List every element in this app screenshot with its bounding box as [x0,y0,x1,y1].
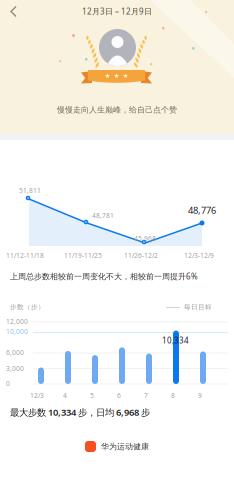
staticText: 11/19-11/25 [64,251,102,260]
staticText: 6,000 [6,348,24,357]
staticText: 0 [6,379,10,388]
staticText: 10,000 [6,327,28,336]
staticText: 每日目标 [184,303,212,311]
staticText: 48,781 [92,211,114,220]
staticText: 11/26-12/2 [124,251,158,260]
staticText: 3,000 [6,364,24,373]
staticText: 11/12-11/18 [6,251,44,260]
staticText: 12/3 [30,391,44,400]
staticText: 12,000 [6,317,28,326]
staticText: 12月3日 – 12月9日 [82,6,152,17]
staticText: 7 [144,391,148,400]
staticText: 4 [63,391,67,400]
staticText: 步数 [12,13,36,28]
staticText: 华为运动健康 [101,442,149,451]
staticText: 6 [117,391,121,400]
staticText: 5 [90,391,94,400]
staticText: 12/3-12/9 [184,251,214,260]
staticText: 51,811 [19,186,41,195]
staticText: 最大步数 10,334 步，日均 6,968 步 [10,406,150,418]
staticText: 8 [171,391,175,400]
staticText: 步数（步） [10,303,45,311]
staticText: 45,968 [134,234,156,243]
staticText: 上周总步数相较前一周变化不大，相较前一周提升6% [10,271,198,282]
staticText: 9 [198,391,202,400]
staticText: 48,776 [188,204,216,216]
staticText: 10,334 [162,335,189,346]
staticText: 慢慢走向人生巅峰，给自己点个赞 [57,105,177,115]
button[interactable]: Back [0,0,30,24]
